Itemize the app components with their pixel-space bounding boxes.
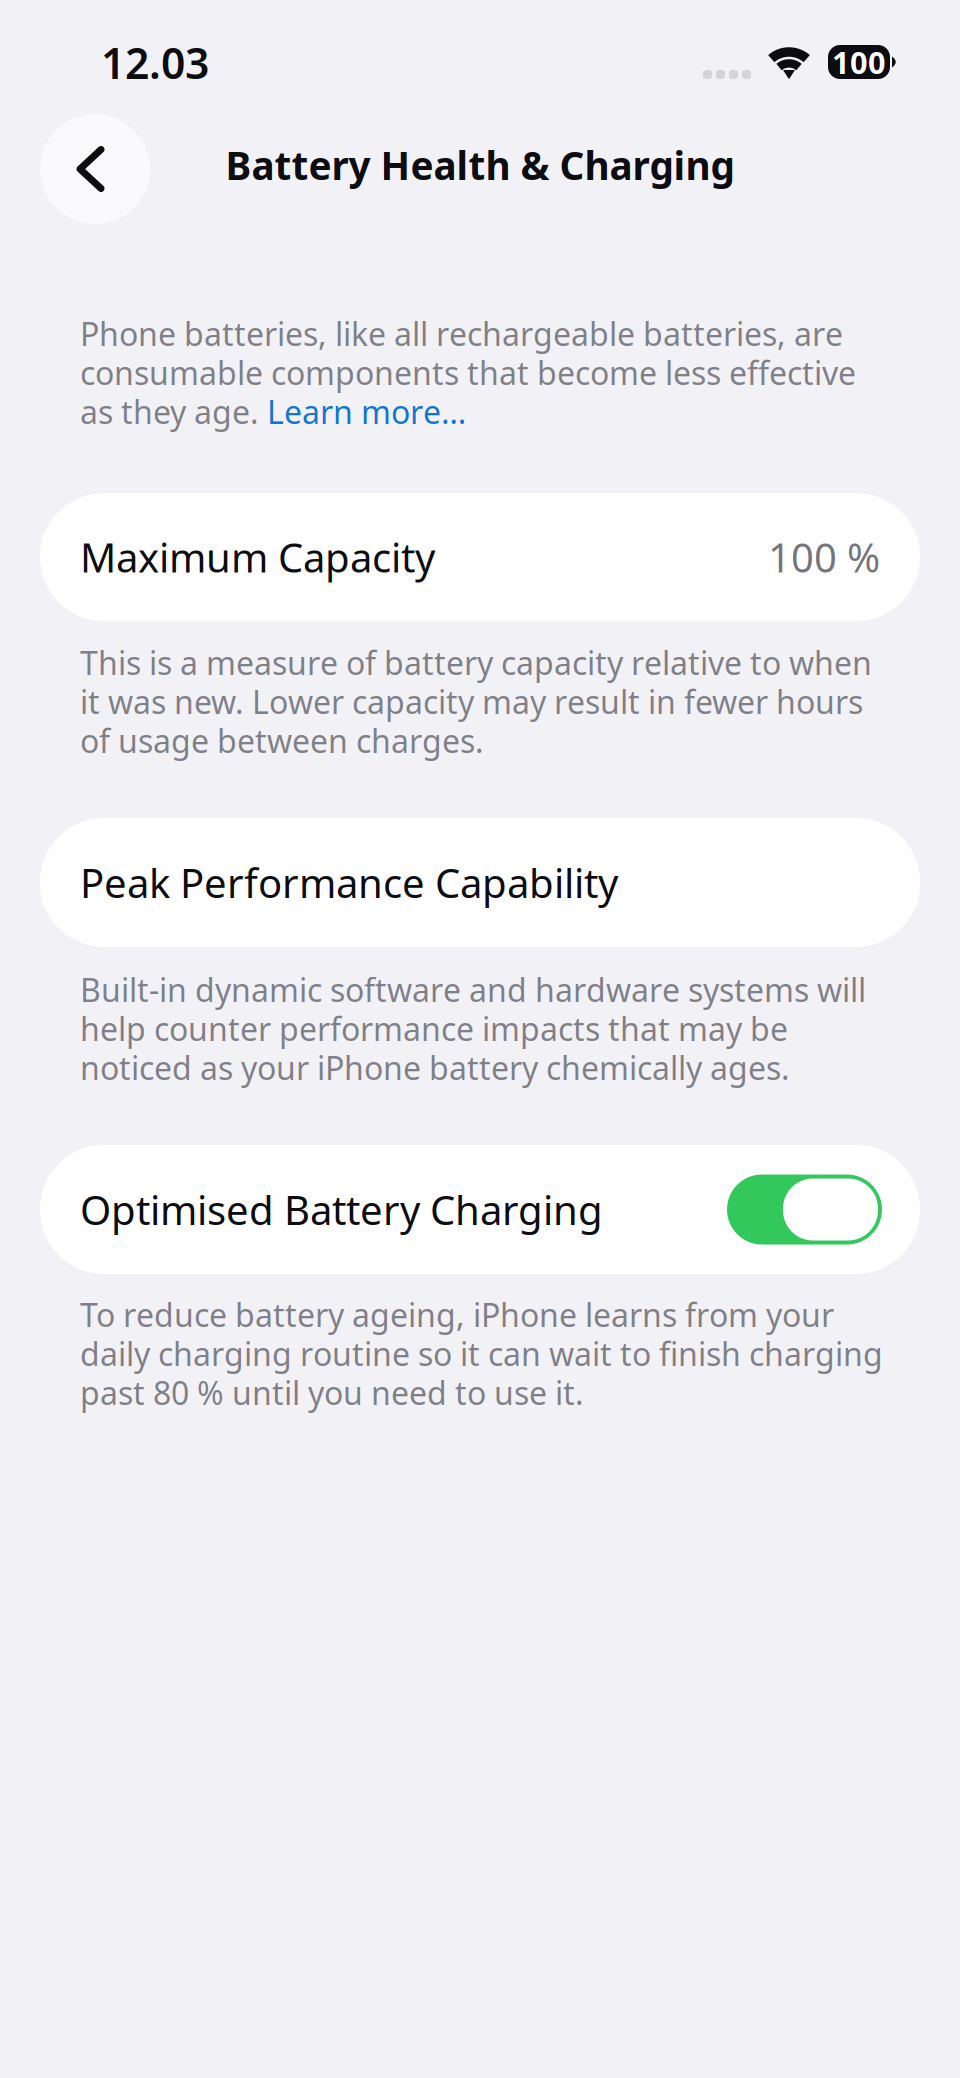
staticText: daily charging routine so it can wait to… [80,1332,883,1375]
staticText: help counter performance impacts that ma… [80,1007,788,1050]
staticText: Peak Performance Capability [80,856,618,909]
staticText: Phone batteries, like all rechargeable b… [80,312,843,355]
staticText: Built-in dynamic software and hardware s… [80,968,866,1011]
staticText: as they age. [80,390,267,433]
staticText: To reduce battery ageing, iPhone learns … [80,1293,834,1336]
staticText: it was new. Lower capacity may result in… [80,680,863,723]
staticText: past 80 % until you need to use it. [80,1371,584,1414]
button[interactable]: Optimised Battery Charging, on [727,1174,880,1244]
staticText: 100 % [768,530,880,583]
staticText: consumable components that become less e… [80,351,856,394]
staticText: 12.03 [101,34,209,91]
staticText: This is a measure of battery capacity re… [80,641,872,684]
staticText: Optimised Battery Charging [80,1183,603,1236]
staticText: noticed as your iPhone battery chemicall… [80,1046,790,1089]
button[interactable]: Back [40,114,150,224]
button[interactable]: Learn more… [267,390,466,433]
button[interactable]: Peak Performance Capability [0,818,920,947]
staticText: Maximum Capacity [80,530,435,583]
staticText: Learn more… [267,390,466,433]
staticText: 100 [832,42,886,82]
button[interactable]: Maximum Capacity [0,493,920,621]
staticText: Battery Health & Charging [225,139,734,191]
staticText: of usage between charges. [80,719,484,762]
